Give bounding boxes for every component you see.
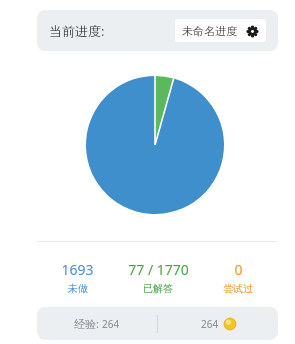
staticText: 1693 [61,260,94,279]
staticText: 264 [102,317,120,331]
button[interactable]: 1693 [37,258,118,297]
button[interactable]: 未命名进度 [175,19,266,42]
button[interactable]: 经验: [37,307,278,340]
button[interactable]: 当前进度: [37,10,278,51]
staticText: 未做 [68,282,88,295]
staticText: 当前进度: [49,22,105,40]
button[interactable]: 77 / 1770 [118,258,198,297]
staticText: 77 / 1770 [128,260,189,279]
staticText: 264 [201,317,219,331]
staticText: 经验: [74,316,102,331]
button[interactable]: Settings [245,24,259,38]
button[interactable]: 0 [198,258,278,297]
staticText: 未命名进度 [182,24,237,38]
staticText: 0 [234,260,243,279]
staticText: 尝试过 [223,282,253,295]
staticText: 已解答 [143,282,173,295]
